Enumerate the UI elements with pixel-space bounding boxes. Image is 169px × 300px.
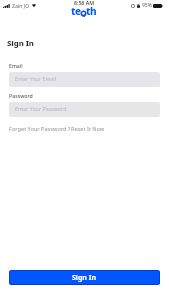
staticText: te — [71, 4, 81, 18]
staticText: Forget Your Password ? — [9, 125, 71, 133]
staticText: th — [86, 4, 97, 18]
button[interactable]: Reset It Now — [71, 125, 105, 133]
button[interactable]: Email input — [9, 72, 160, 87]
staticText: Enter Your Email — [15, 75, 57, 82]
staticText: Zain JO — [12, 2, 30, 9]
button[interactable]: Sign In — [9, 270, 160, 285]
staticText: 95% — [142, 2, 152, 9]
staticText: Enter Your Password — [15, 105, 67, 112]
button[interactable]: Password input — [9, 102, 160, 117]
staticText: Email — [9, 62, 23, 69]
staticText: Sign In — [72, 273, 97, 283]
staticText: 8:58 AM — [74, 0, 94, 6]
staticText: Sign In — [7, 38, 34, 49]
staticText: Password — [9, 92, 33, 99]
